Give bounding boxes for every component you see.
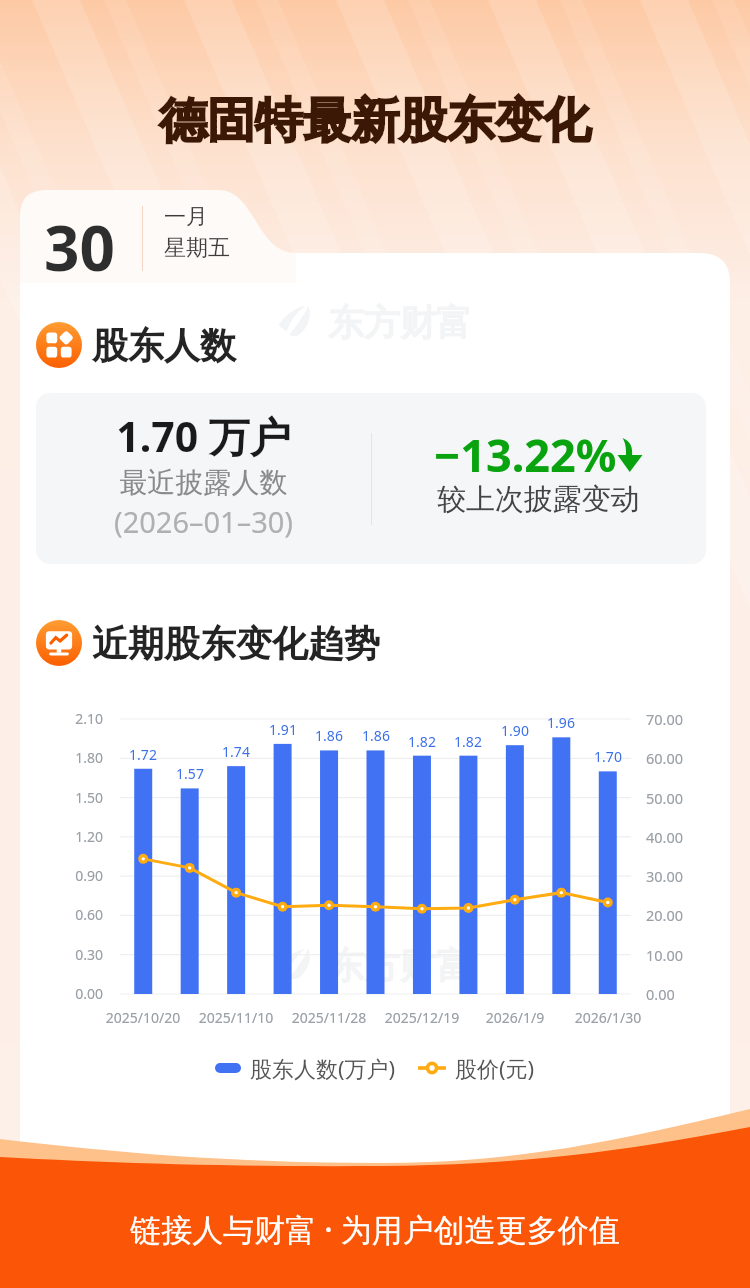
staticText: 近期股东变化趋势 — [92, 621, 380, 666]
staticText: 1.72 — [113, 745, 173, 764]
staticText: 30.00 — [646, 866, 736, 886]
staticText: 1.91 — [253, 720, 313, 739]
staticText: 0.00 — [53, 984, 103, 1003]
staticText: 1.70 — [578, 747, 638, 766]
button[interactable]: 近期股东变化趋势 — [36, 620, 380, 666]
staticText: 1.82 — [438, 732, 498, 751]
staticText: 60.00 — [646, 748, 736, 768]
button[interactable]: 1.70 万户 — [36, 393, 706, 564]
staticText: 股价(元) — [455, 1053, 535, 1083]
staticText: 0.30 — [53, 945, 103, 964]
staticText: 2025/11/28 — [269, 1008, 389, 1027]
staticText: 最近披露人数 — [36, 465, 371, 500]
staticText: 1.80 — [53, 748, 103, 767]
staticText: 0.90 — [53, 866, 103, 885]
staticText: 2.10 — [53, 709, 103, 728]
staticText: 链接人与财富 · 为用户创造更多价值 — [0, 1208, 750, 1250]
staticText: 星期五 — [164, 234, 230, 262]
staticText: 1.57 — [160, 764, 220, 783]
staticText: 70.00 — [646, 709, 736, 729]
staticText: 1.96 — [531, 713, 591, 732]
staticText: 1.70 万户 — [36, 408, 371, 464]
staticText: 德固特最新股东变化 — [0, 91, 750, 151]
button[interactable]: 股东人数 — [36, 322, 236, 368]
staticText: 40.00 — [646, 827, 736, 847]
staticText: 一月 — [164, 203, 208, 231]
staticText: 东方财富 — [328, 943, 472, 983]
staticText: 50.00 — [646, 788, 736, 808]
staticText: 1.74 — [206, 742, 266, 761]
staticText: 1.82 — [392, 732, 452, 751]
other: 近期股东变化趋势 — [36, 620, 82, 666]
staticText: 2026/1/30 — [548, 1008, 668, 1027]
staticText: 10.00 — [646, 945, 736, 965]
staticText: 0.00 — [646, 984, 736, 1004]
staticText: 2025/12/19 — [362, 1008, 482, 1027]
staticText: 东方财富 — [328, 300, 472, 340]
staticText: 股东人数(万户) — [250, 1053, 396, 1083]
staticText: 2025/11/10 — [176, 1008, 296, 1027]
staticText: 1.86 — [346, 726, 406, 745]
staticText: 1.50 — [53, 788, 103, 807]
staticText: 股东人数 — [92, 323, 236, 368]
staticText: 2025/10/20 — [83, 1008, 203, 1027]
staticText: (2026–01–30) — [36, 502, 371, 541]
staticText: 20.00 — [646, 905, 736, 925]
button[interactable]: 30 — [20, 190, 296, 283]
staticText: 1.90 — [485, 721, 545, 740]
staticText: 30 — [44, 205, 115, 289]
staticText: 1.86 — [299, 726, 359, 745]
staticText: 0.60 — [53, 905, 103, 924]
staticText: 1.20 — [53, 827, 103, 846]
staticText: 较上次披露变动 — [371, 481, 706, 518]
staticText: 2026/1/9 — [455, 1008, 575, 1027]
staticText: −13.22% — [434, 424, 617, 485]
other: 股东人数 — [36, 322, 82, 368]
